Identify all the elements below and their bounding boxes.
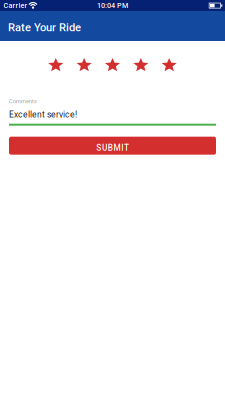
button[interactable]: Rate 4 stars [133, 58, 148, 71]
staticText: Rate Your Ride [8, 21, 81, 34]
button[interactable]: Rate 5 stars [162, 58, 177, 71]
button[interactable]: SUBMIT [9, 137, 216, 155]
button[interactable]: Rate 3 stars [105, 58, 120, 71]
button[interactable]: Rate 2 stars [77, 58, 92, 71]
staticText: Comments [9, 98, 37, 105]
staticText: Excellent service! [9, 110, 77, 120]
staticText: 10:04 PM [97, 1, 128, 10]
button[interactable]: Rate 1 star [48, 58, 63, 71]
staticText: Carrier [3, 1, 27, 10]
staticText: SUBMIT [96, 143, 129, 153]
